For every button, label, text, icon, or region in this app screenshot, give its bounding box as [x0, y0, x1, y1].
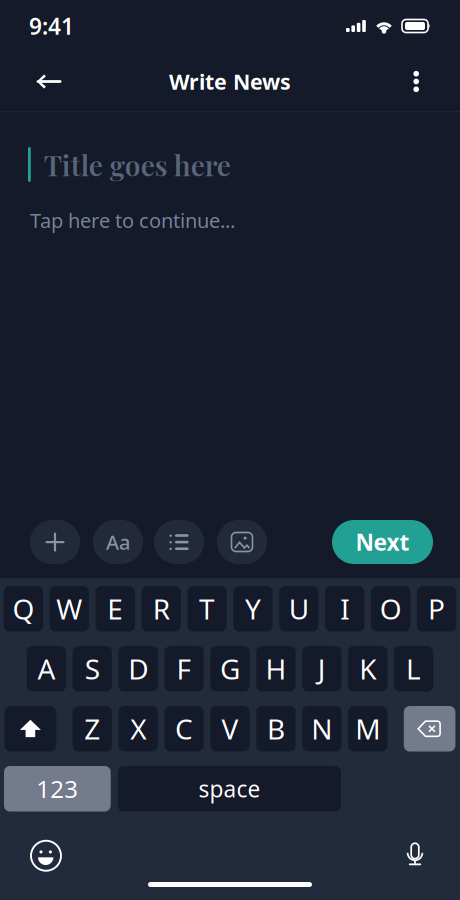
staticText: W	[56, 590, 82, 627]
button[interactable]: Emoji	[31, 841, 61, 871]
staticText: B	[267, 710, 285, 747]
button[interactable]: Insert image	[217, 520, 267, 564]
staticText: C	[175, 710, 193, 747]
staticText: S	[85, 650, 100, 687]
button[interactable]: S	[73, 646, 112, 691]
staticText: N	[311, 710, 332, 747]
button[interactable]: W	[50, 586, 89, 631]
button[interactable]: Q	[4, 586, 43, 631]
staticText: I	[340, 590, 349, 627]
staticText: Q	[12, 590, 34, 627]
button[interactable]: Next	[332, 520, 433, 564]
button[interactable]: J	[302, 646, 341, 691]
button[interactable]: U	[279, 586, 318, 631]
button[interactable]: H	[256, 646, 296, 691]
button[interactable]: Text style	[93, 520, 143, 564]
button[interactable]: G	[210, 646, 250, 691]
button[interactable]: F	[164, 646, 204, 691]
button[interactable]: I	[325, 586, 364, 631]
button[interactable]: space	[118, 766, 341, 811]
staticText: Z	[84, 710, 100, 747]
staticText: T	[199, 590, 215, 627]
staticText: L	[406, 650, 421, 687]
staticText: Title goes here	[44, 146, 231, 183]
staticText: D	[128, 650, 148, 687]
staticText: 123	[36, 773, 78, 805]
button[interactable]: P	[417, 586, 456, 631]
button[interactable]: Backspace	[404, 706, 455, 751]
button[interactable]: Y	[233, 586, 273, 631]
button[interactable]: K	[348, 646, 387, 691]
button[interactable]: V	[210, 706, 250, 751]
staticText: U	[289, 590, 309, 627]
staticText: A	[37, 650, 55, 687]
button[interactable]: Back	[14, 56, 78, 107]
staticText: H	[265, 650, 286, 687]
staticText: 9:41	[29, 11, 74, 41]
button[interactable]: O	[371, 586, 410, 631]
staticText: V	[221, 710, 238, 747]
staticText: E	[107, 590, 123, 627]
button[interactable]: R	[141, 586, 181, 631]
button[interactable]: D	[118, 646, 158, 691]
button[interactable]: More options	[393, 55, 437, 108]
button[interactable]: E	[96, 586, 135, 631]
staticText: Y	[245, 590, 261, 627]
button[interactable]: Dictate	[405, 842, 425, 869]
button[interactable]: Bullet list	[154, 520, 204, 564]
staticText: G	[220, 650, 240, 687]
button[interactable]: N	[302, 706, 341, 751]
button[interactable]: B	[256, 706, 296, 751]
staticText: M	[355, 710, 380, 747]
staticText: Tap here to continue...	[30, 207, 235, 234]
button[interactable]: M	[348, 706, 387, 751]
staticText: Write News	[169, 67, 291, 96]
staticText: Aa	[106, 529, 130, 555]
staticText: R	[153, 590, 170, 627]
button[interactable]: Shift	[5, 706, 56, 751]
button[interactable]: L	[394, 646, 433, 691]
button[interactable]: A	[27, 646, 66, 691]
button[interactable]: Add block	[30, 520, 80, 564]
button[interactable]: 123	[4, 766, 111, 811]
staticText: J	[318, 650, 326, 687]
button[interactable]: X	[118, 706, 158, 751]
staticText: F	[177, 650, 192, 687]
staticText: Next	[355, 527, 409, 557]
staticText: K	[359, 650, 376, 687]
button[interactable]: T	[187, 586, 227, 631]
button[interactable]: Z	[73, 706, 112, 751]
staticText: X	[130, 710, 146, 747]
staticText: O	[380, 590, 402, 627]
staticText: P	[428, 590, 445, 627]
button[interactable]: C	[164, 706, 204, 751]
staticText: space	[198, 774, 260, 804]
